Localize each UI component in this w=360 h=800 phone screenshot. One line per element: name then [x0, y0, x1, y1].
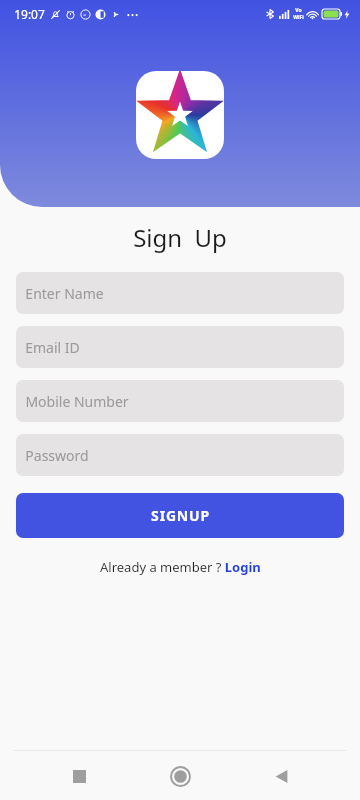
button[interactable]: Password — [16, 434, 344, 476]
button[interactable]: Already a member ? Login — [100, 558, 261, 576]
staticText: Email ID — [25, 338, 80, 357]
staticText: Password — [25, 446, 89, 465]
staticText: Enter Name — [25, 284, 104, 303]
button[interactable]: Enter Name — [16, 272, 344, 314]
staticText: Vo WiFi — [293, 7, 304, 21]
button[interactable]: Back — [259, 754, 303, 798]
button[interactable]: Mobile Number — [16, 380, 344, 422]
staticText: 19:07 — [14, 6, 45, 22]
staticText: Mobile Number — [25, 392, 129, 411]
button[interactable]: Home — [158, 754, 202, 798]
staticText: Already a member ? Login — [100, 558, 261, 576]
staticText: Sign Up — [133, 221, 227, 254]
button[interactable]: Email ID — [16, 326, 344, 368]
button[interactable]: SIGNUP — [16, 493, 344, 538]
staticText: SIGNUP — [151, 506, 210, 525]
button[interactable]: Recent apps — [57, 754, 101, 798]
